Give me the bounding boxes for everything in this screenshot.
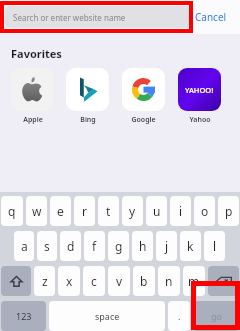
button[interactable]: YAHOO!: [178, 68, 234, 125]
button[interactable]: i: [170, 196, 191, 226]
button[interactable]: 123: [1, 301, 46, 331]
staticText: m: [188, 273, 200, 289]
button[interactable]: Bing: [66, 68, 122, 125]
staticText: YAHOO!: [185, 85, 214, 95]
button[interactable]: Backspace: [208, 266, 239, 296]
staticText: go: [211, 310, 222, 322]
button[interactable]: y: [122, 196, 143, 226]
staticText: Bing: [80, 115, 96, 125]
staticText: Apple: [23, 115, 43, 125]
staticText: s: [44, 238, 50, 254]
button[interactable]: s: [37, 231, 57, 261]
button[interactable]: b: [133, 266, 155, 296]
button[interactable]: Google: [122, 68, 178, 125]
staticText: n: [165, 273, 173, 289]
staticText: Cancel: [195, 10, 227, 24]
staticText: w: [32, 203, 42, 219]
button[interactable]: v: [108, 266, 130, 296]
button[interactable]: .: [168, 301, 190, 331]
staticText: l: [213, 238, 217, 254]
button[interactable]: o: [194, 196, 215, 226]
button[interactable]: f: [84, 231, 105, 261]
staticText: p: [225, 203, 233, 219]
button[interactable]: j: [156, 231, 177, 261]
staticText: Yahoo: [189, 115, 211, 125]
button[interactable]: m: [183, 266, 205, 296]
button[interactable]: Apple: [11, 68, 66, 125]
button[interactable]: g: [108, 231, 129, 261]
button[interactable]: z: [34, 266, 55, 296]
button[interactable]: a: [14, 231, 34, 261]
staticText: v: [116, 273, 123, 289]
button[interactable]: q: [1, 196, 23, 226]
staticText: d: [67, 238, 75, 254]
button[interactable]: Cancel: [195, 0, 227, 34]
button[interactable]: c: [83, 266, 105, 296]
staticText: f: [92, 238, 97, 254]
button[interactable]: t: [98, 196, 119, 226]
button[interactable]: Search or enter website name: [5, 6, 189, 28]
staticText: g: [115, 238, 123, 254]
staticText: u: [153, 203, 161, 219]
button[interactable]: e: [50, 196, 71, 226]
staticText: Search or enter website name: [13, 12, 126, 23]
staticText: e: [57, 203, 64, 219]
button[interactable]: p: [218, 196, 239, 226]
staticText: y: [129, 203, 136, 219]
staticText: .: [178, 310, 181, 322]
button[interactable]: d: [60, 231, 81, 261]
staticText: k: [187, 238, 194, 254]
staticText: Favorites: [11, 46, 62, 61]
staticText: o: [201, 203, 209, 219]
staticText: c: [91, 273, 97, 289]
button[interactable]: space: [49, 301, 165, 331]
staticText: x: [66, 273, 73, 289]
button[interactable]: go: [193, 301, 239, 331]
staticText: a: [21, 238, 28, 254]
staticText: i: [179, 203, 183, 219]
staticText: j: [165, 238, 169, 254]
button[interactable]: u: [146, 196, 167, 226]
button[interactable]: w: [26, 196, 47, 226]
staticText: space: [95, 310, 120, 322]
button[interactable]: Shift: [1, 266, 31, 296]
staticText: r: [82, 203, 87, 219]
staticText: 123: [16, 310, 32, 322]
staticText: b: [140, 273, 148, 289]
staticText: h: [139, 238, 147, 254]
button[interactable]: h: [132, 231, 153, 261]
button[interactable]: n: [158, 266, 180, 296]
staticText: q: [8, 203, 16, 219]
staticText: Google: [131, 115, 156, 125]
button[interactable]: x: [58, 266, 80, 296]
button[interactable]: k: [180, 231, 201, 261]
staticText: t: [106, 203, 111, 219]
button[interactable]: r: [74, 196, 95, 226]
staticText: z: [42, 273, 48, 289]
button[interactable]: l: [204, 231, 225, 261]
